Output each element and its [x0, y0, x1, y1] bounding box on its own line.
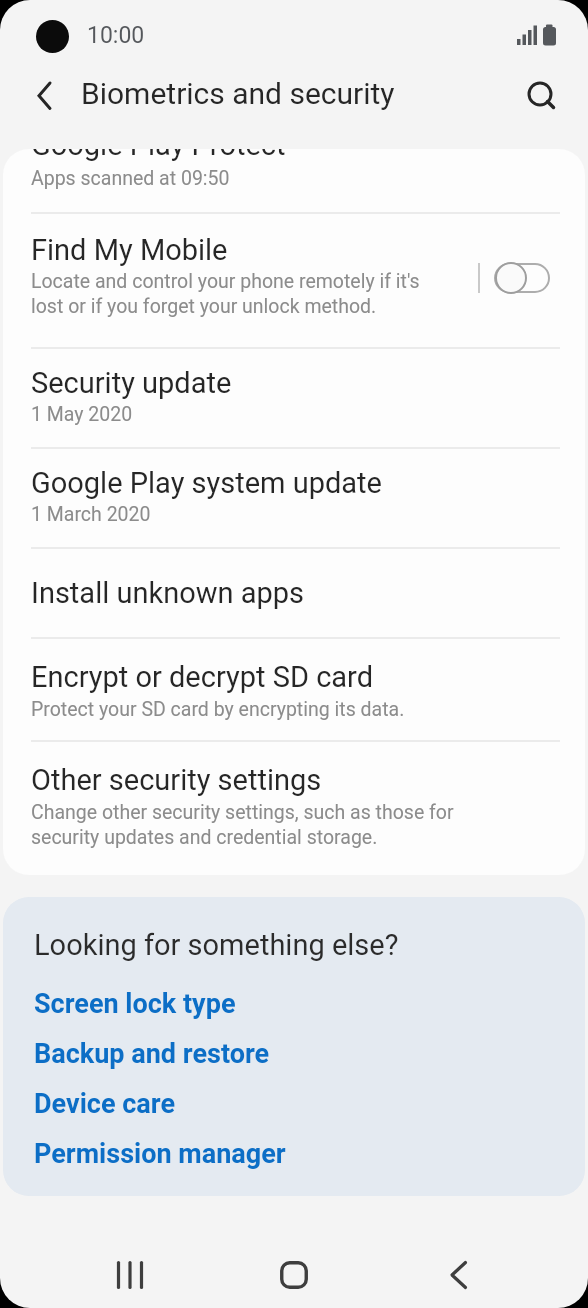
staticText: 1 March 2020 — [31, 503, 151, 526]
staticText: Encrypt or decrypt SD card — [31, 660, 373, 694]
button[interactable]: Permission manager — [34, 1129, 286, 1179]
staticText: Permission manager — [34, 1138, 286, 1170]
staticText: Locate and control your phone remotely i… — [31, 270, 420, 318]
staticText: Biometrics and security — [81, 76, 395, 111]
button[interactable]: Find My Mobile — [3, 214, 585, 347]
staticText: Install unknown apps — [31, 576, 304, 610]
button[interactable]: Security update — [3, 349, 585, 447]
button[interactable] — [90, 1235, 170, 1308]
staticText: Google Play Protect — [31, 149, 286, 162]
button[interactable]: Screen lock type — [34, 979, 236, 1029]
staticText: 1 May 2020 — [31, 403, 133, 426]
staticText: Device care — [34, 1088, 175, 1120]
button[interactable] — [254, 1235, 334, 1308]
button[interactable] — [419, 1235, 499, 1308]
staticText: Screen lock type — [34, 988, 236, 1020]
staticText: Google Play system update — [31, 466, 382, 500]
staticText: Security update — [31, 366, 232, 400]
button[interactable]: Other security settings — [3, 742, 585, 875]
staticText: Looking for something else? — [34, 928, 399, 962]
staticText: Change other security settings, such as … — [31, 801, 454, 849]
staticText: 10:00 — [87, 22, 145, 49]
staticText: Find My Mobile — [31, 233, 228, 267]
button[interactable]: Install unknown apps — [3, 549, 585, 637]
button[interactable]: Encrypt or decrypt SD card — [3, 639, 585, 740]
button[interactable]: Device care — [34, 1079, 175, 1129]
staticText: Apps scanned at 09:50 — [31, 167, 230, 190]
button[interactable]: Google Play system update — [3, 449, 585, 547]
staticText: Backup and restore — [34, 1038, 270, 1070]
button[interactable] — [26, 78, 66, 118]
button[interactable]: Backup and restore — [34, 1029, 270, 1079]
staticText: Other security settings — [31, 763, 322, 797]
staticText: Protect your SD card by encrypting its d… — [31, 698, 405, 721]
button[interactable] — [518, 72, 562, 116]
button[interactable]: Google Play Protect — [3, 149, 585, 212]
